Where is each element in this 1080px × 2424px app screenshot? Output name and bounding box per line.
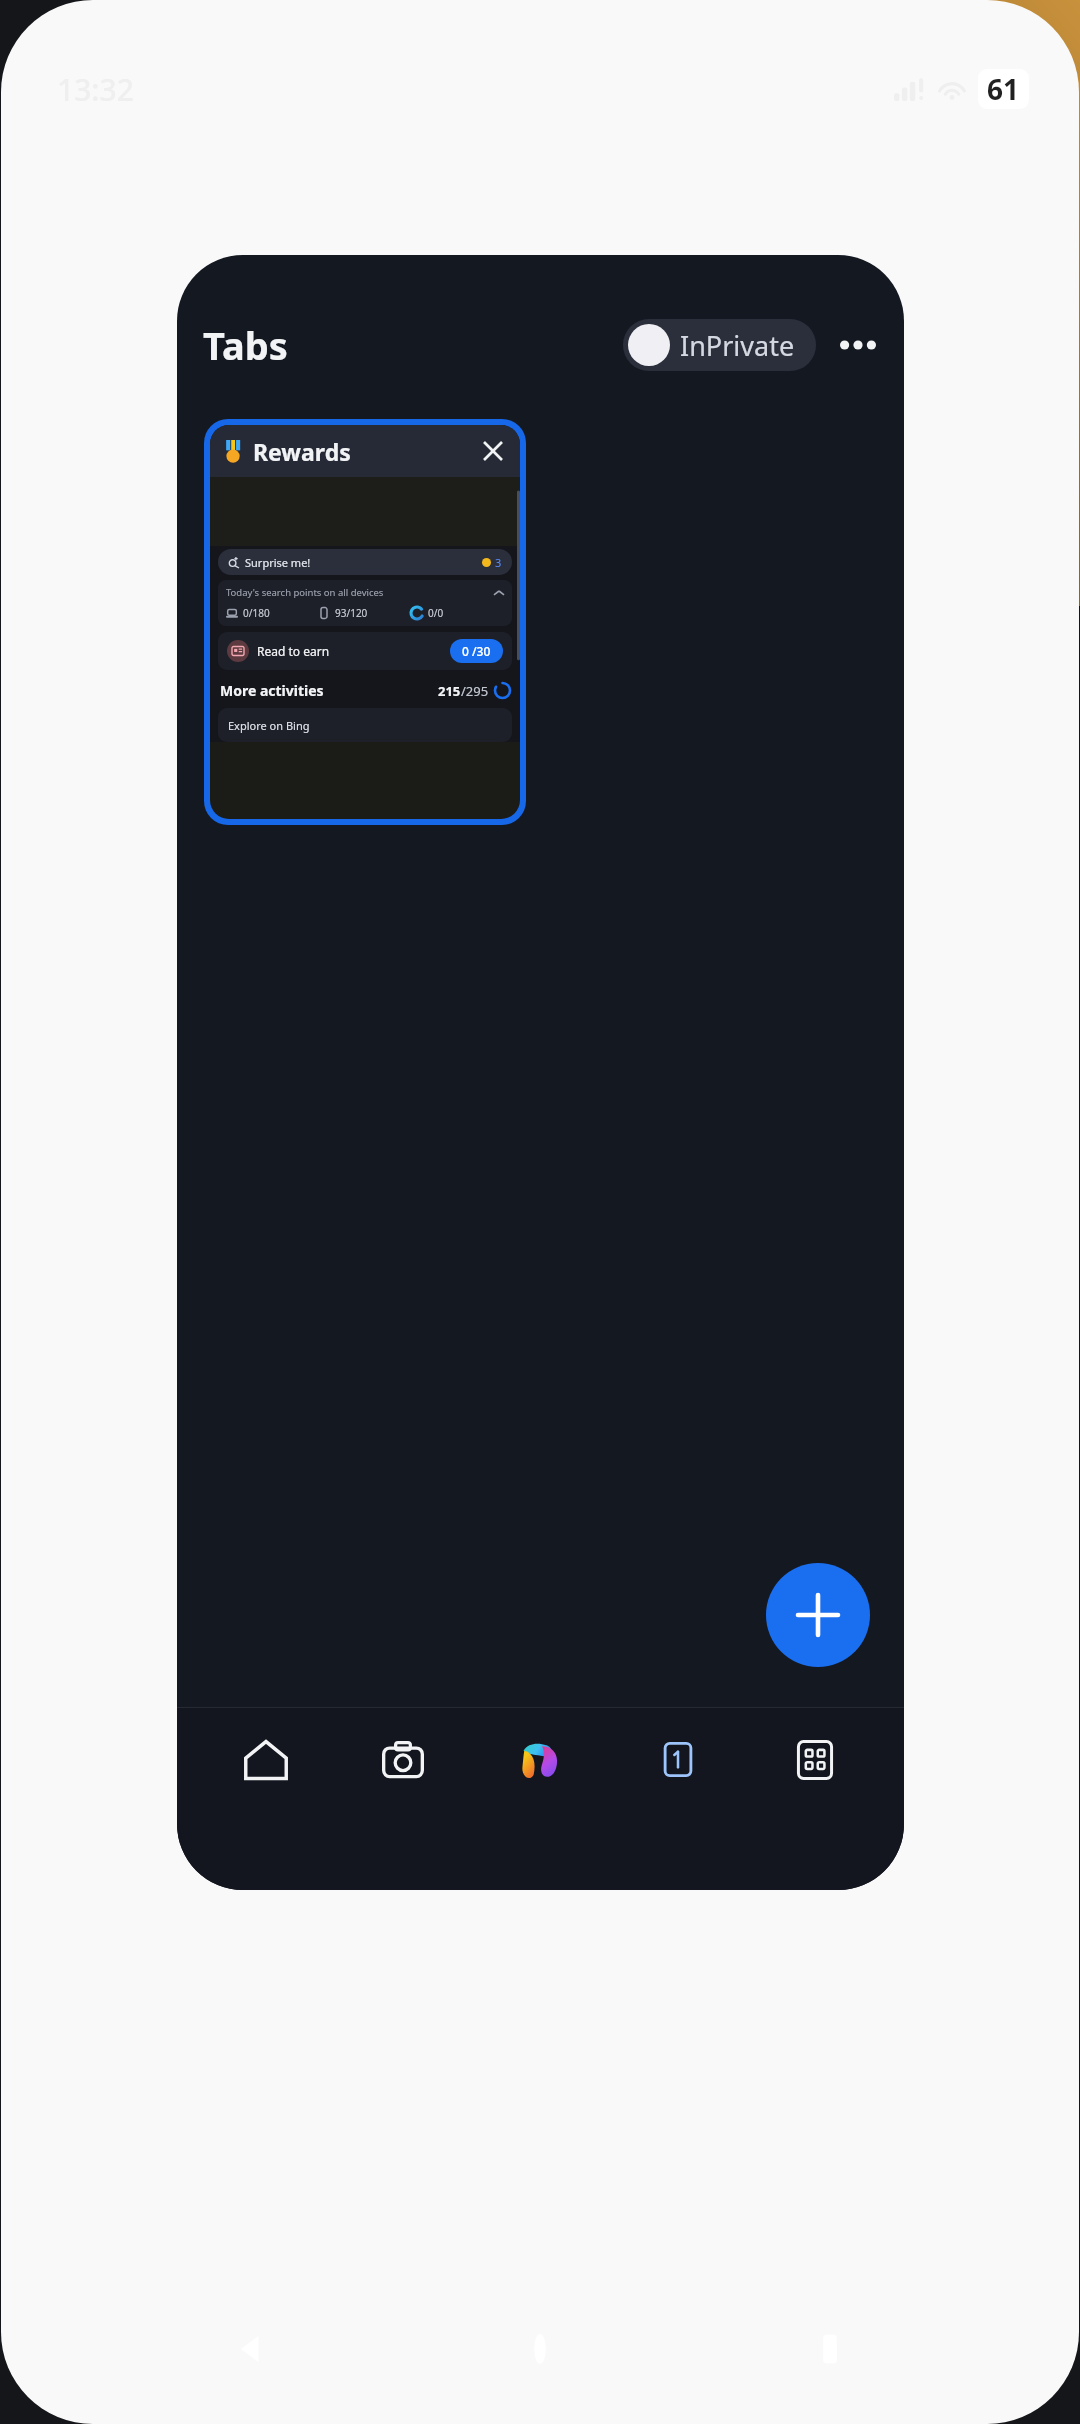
button[interactable]: Tabs [630,1716,726,1812]
staticText: 61 [987,70,1020,108]
button[interactable]: Close tab [478,436,508,466]
button[interactable]: Surprise me! [218,549,512,575]
button[interactable]: Camera [355,1716,451,1812]
button[interactable]: More options [832,319,884,371]
staticText: Today's search points on all devices [226,586,384,599]
staticText: InPrivate [680,327,795,364]
staticText: /295 [461,682,489,700]
staticText: Tabs [203,319,288,371]
button[interactable]: InPrivate [623,319,816,371]
staticText: 215 [438,682,461,700]
button[interactable]: Today's search points on all devices [218,580,512,626]
button[interactable]: New tab [766,1563,870,1667]
staticText: 13:32 [57,69,134,110]
staticText: Surprise me! [245,555,311,570]
staticText: 0/180 [243,606,270,620]
staticText: 3 [495,555,502,570]
staticText: Read to earn [257,643,330,659]
staticText: 0 /30 [462,643,491,659]
staticText: Rewards [253,436,351,467]
button[interactable]: Apps [767,1716,863,1812]
button[interactable]: Home [218,1716,314,1812]
button[interactable]: Rewards [204,419,526,825]
staticText: Explore on Bing [228,718,310,733]
button[interactable]: Copilot [493,1716,589,1812]
button[interactable]: Explore on Bing [218,708,512,742]
staticText: 0/0 [428,606,444,620]
staticText: More activities [220,681,324,700]
staticText: 93/120 [335,606,368,620]
button[interactable]: Read to earn [218,632,512,670]
